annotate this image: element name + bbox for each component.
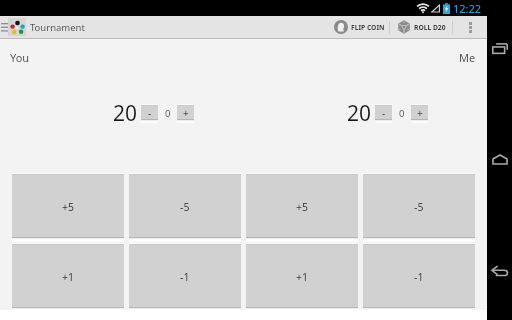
button[interactable]: - bbox=[375, 104, 392, 123]
button[interactable]: +5 bbox=[12, 173, 124, 242]
button[interactable]: -5 bbox=[129, 173, 241, 242]
button[interactable]: ROLL D20 bbox=[390, 16, 452, 38]
staticText: - bbox=[148, 106, 152, 120]
staticText: +1 bbox=[62, 270, 75, 284]
staticText: 12:22 bbox=[453, 1, 482, 16]
staticText: 0 bbox=[165, 107, 171, 120]
staticText: 0 bbox=[399, 107, 405, 120]
button[interactable]: -1 bbox=[129, 243, 241, 312]
staticText: -5 bbox=[414, 200, 424, 214]
button[interactable]: + bbox=[411, 104, 428, 123]
staticText: +5 bbox=[296, 200, 309, 214]
staticText: FLIP COIN bbox=[351, 22, 384, 33]
staticText: -1 bbox=[180, 270, 190, 284]
button[interactable]: Navigate up bbox=[0, 16, 8, 38]
button[interactable]: - bbox=[141, 104, 158, 123]
button[interactable]: Recents bbox=[487, 36, 512, 61]
button[interactable]: +1 bbox=[246, 243, 358, 312]
button[interactable]: FLIP COIN bbox=[327, 16, 389, 38]
staticText: Tournament bbox=[30, 21, 85, 34]
button[interactable]: -5 bbox=[363, 173, 475, 242]
button[interactable]: + bbox=[177, 104, 194, 123]
button[interactable]: More options bbox=[453, 16, 487, 38]
staticText: + bbox=[183, 106, 189, 120]
staticText: +1 bbox=[296, 270, 309, 284]
button[interactable]: Back bbox=[487, 258, 512, 283]
staticText: + bbox=[417, 106, 423, 120]
staticText: Me bbox=[459, 50, 476, 65]
staticText: -5 bbox=[180, 200, 190, 214]
button[interactable]: -1 bbox=[363, 243, 475, 312]
staticText: +5 bbox=[62, 200, 75, 214]
staticText: ROLL D20 bbox=[414, 22, 446, 33]
button[interactable]: +5 bbox=[246, 173, 358, 242]
staticText: 20 bbox=[113, 99, 138, 128]
staticText: You bbox=[10, 50, 30, 65]
button[interactable]: +1 bbox=[12, 243, 124, 312]
button[interactable]: Home bbox=[487, 147, 512, 172]
staticText: - bbox=[382, 106, 386, 120]
staticText: 20 bbox=[347, 99, 372, 128]
staticText: -1 bbox=[414, 270, 424, 284]
